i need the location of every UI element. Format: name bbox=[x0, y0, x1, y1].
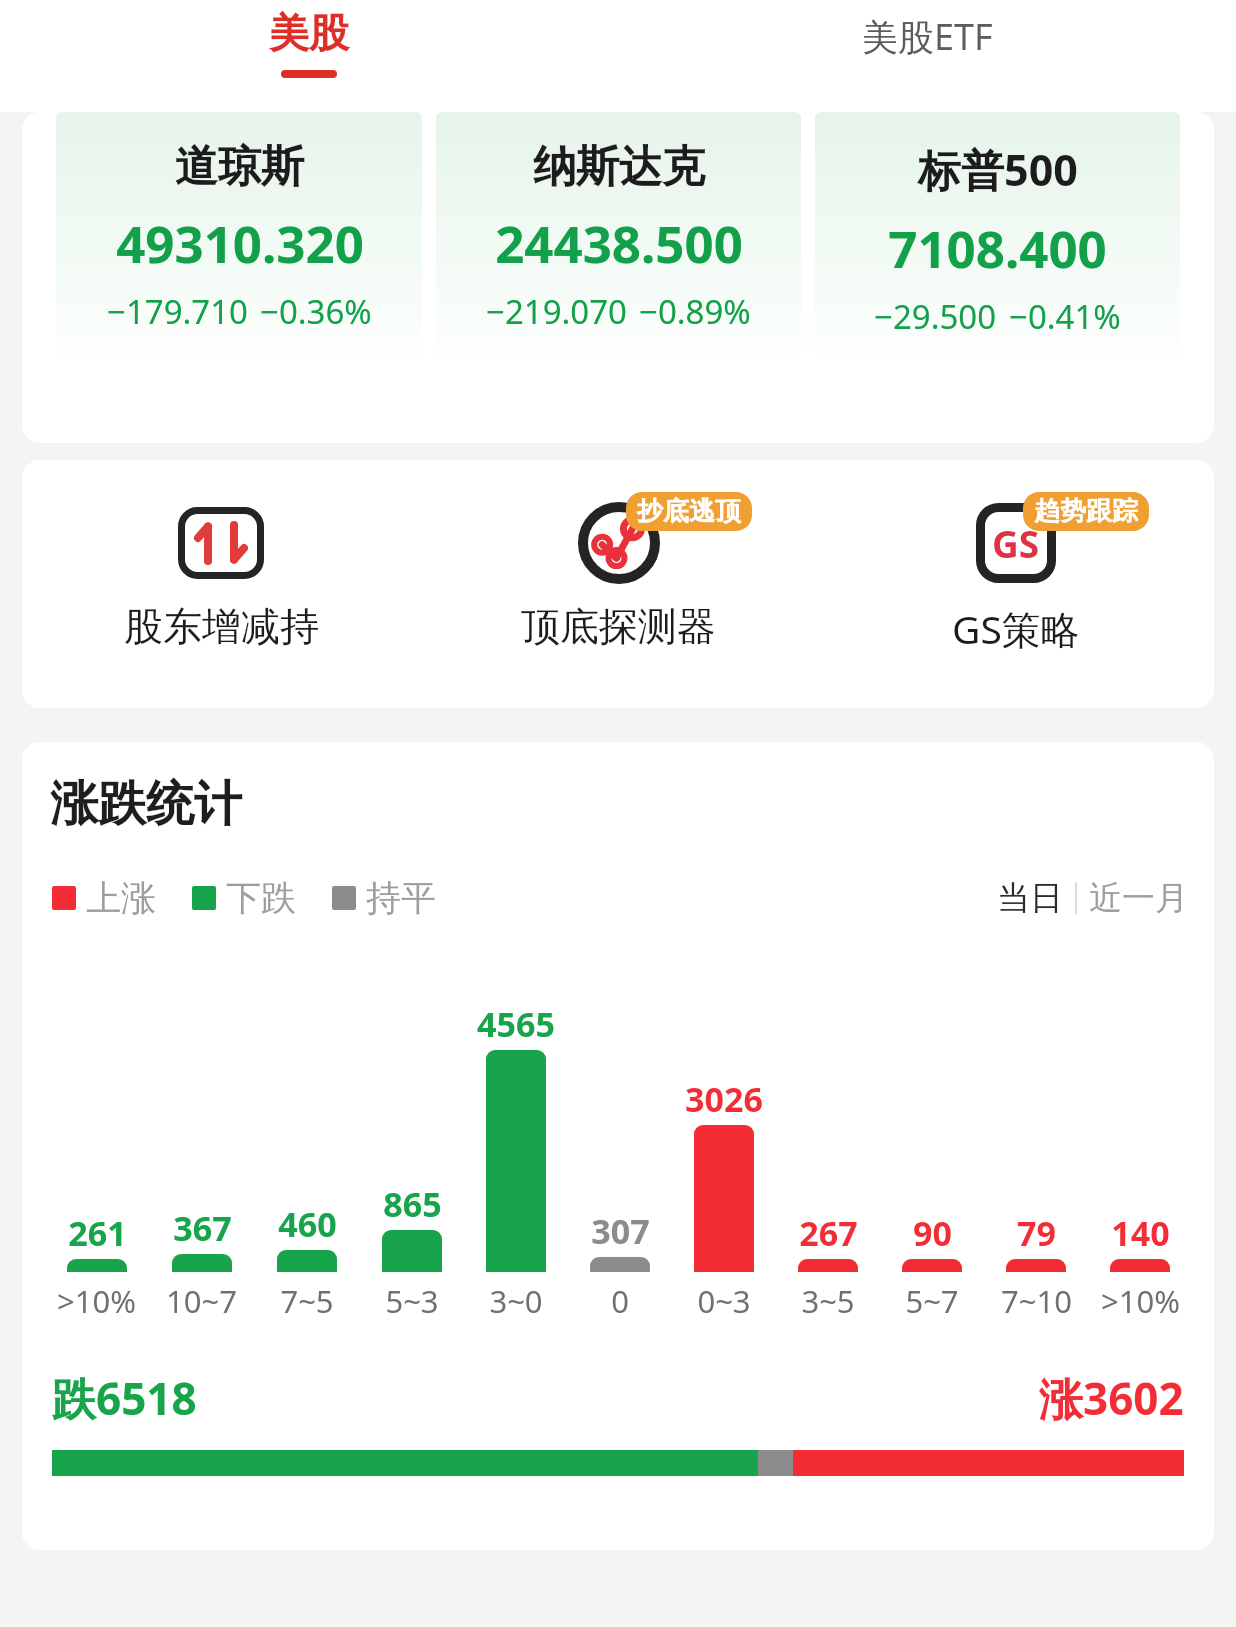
staticText: 865 bbox=[383, 1181, 442, 1227]
button[interactable]: 当日 bbox=[997, 877, 1063, 919]
staticText: 10~7 bbox=[166, 1280, 237, 1322]
staticText: 49310.320 bbox=[116, 208, 364, 277]
staticText: 趋势跟踪 bbox=[1034, 495, 1138, 528]
staticText: 7~5 bbox=[280, 1280, 334, 1322]
staticText: 美股ETF bbox=[862, 12, 993, 61]
other: GS策略 bbox=[976, 503, 1056, 583]
other: 股东增减持 bbox=[178, 507, 264, 579]
staticText: 90 bbox=[913, 1210, 952, 1256]
staticText: 3~5 bbox=[801, 1280, 855, 1322]
staticText: 下跌 bbox=[226, 876, 296, 920]
staticText: 267 bbox=[799, 1210, 858, 1256]
staticText: −29.500 bbox=[874, 294, 997, 339]
staticText: 股东增减持 bbox=[124, 602, 319, 651]
button[interactable]: 顶底探测器 bbox=[420, 490, 817, 651]
staticText: 涨跌统计 bbox=[50, 774, 242, 834]
staticText: 美股 bbox=[269, 8, 349, 58]
staticText: 标普500 bbox=[918, 140, 1078, 199]
staticText: 纳斯达克 bbox=[533, 140, 705, 194]
button[interactable]: 美股ETF bbox=[618, 0, 1236, 112]
staticText: 持平 bbox=[366, 876, 436, 920]
staticText: 0 bbox=[611, 1280, 629, 1322]
staticText: 4565 bbox=[477, 1001, 555, 1047]
staticText: 5~3 bbox=[385, 1280, 439, 1322]
staticText: >10% bbox=[1101, 1280, 1180, 1322]
staticText: −179.710 bbox=[107, 289, 248, 334]
staticText: 0~3 bbox=[697, 1280, 751, 1322]
staticText: 3026 bbox=[685, 1076, 763, 1122]
staticText: 上涨 bbox=[86, 876, 156, 920]
staticText: 3~0 bbox=[489, 1280, 543, 1322]
staticText: 140 bbox=[1111, 1210, 1170, 1256]
staticText: 7~10 bbox=[1001, 1280, 1072, 1322]
staticText: >10% bbox=[57, 1280, 136, 1322]
staticText: 跌6518 bbox=[52, 1368, 197, 1428]
button[interactable]: 股东增减持 bbox=[22, 490, 420, 651]
staticText: 24438.500 bbox=[495, 208, 743, 277]
button[interactable]: 近一月 bbox=[1089, 877, 1188, 919]
staticText: 当日 bbox=[997, 877, 1063, 919]
staticText: 460 bbox=[278, 1201, 337, 1247]
button[interactable]: 纳斯达克 bbox=[436, 112, 801, 372]
staticText: −0.36% bbox=[260, 289, 372, 334]
other: 顶底探测器 bbox=[577, 501, 661, 585]
staticText: 5~7 bbox=[905, 1280, 959, 1322]
staticText: −0.89% bbox=[639, 289, 751, 334]
staticText: 79 bbox=[1017, 1210, 1056, 1256]
staticText: −219.070 bbox=[486, 289, 627, 334]
button[interactable]: 道琼斯 bbox=[56, 112, 422, 372]
staticText: 261 bbox=[68, 1210, 127, 1256]
staticText: GS bbox=[992, 518, 1040, 568]
staticText: 抄底逃顶 bbox=[637, 495, 741, 528]
staticText: 近一月 bbox=[1089, 877, 1188, 919]
staticText: 7108.400 bbox=[888, 213, 1107, 282]
staticText: 涨3602 bbox=[1039, 1368, 1184, 1428]
button[interactable]: 美股 bbox=[0, 0, 618, 112]
staticText: GS策略 bbox=[952, 602, 1080, 655]
button[interactable]: 标普500 bbox=[815, 112, 1180, 372]
staticText: 367 bbox=[173, 1205, 232, 1251]
staticText: 307 bbox=[591, 1208, 650, 1254]
staticText: 顶底探测器 bbox=[521, 602, 716, 651]
button[interactable]: GS策略 bbox=[817, 490, 1214, 655]
staticText: 道琼斯 bbox=[175, 140, 304, 194]
staticText: −0.41% bbox=[1009, 294, 1121, 339]
